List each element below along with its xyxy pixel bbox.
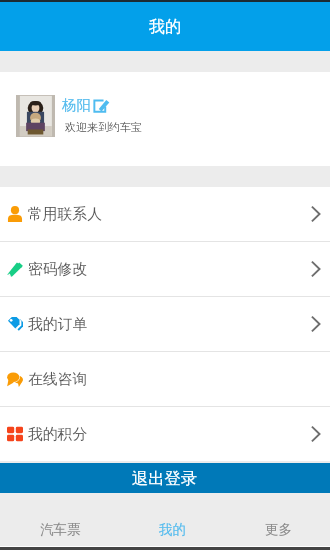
staticText: 汽车票	[40, 521, 81, 538]
button[interactable]: 我的	[117, 512, 227, 546]
staticText: 欢迎来到约车宝	[65, 120, 142, 134]
staticText: 常用联系人	[28, 205, 102, 224]
staticText: 杨阳	[62, 96, 91, 114]
staticText: 我的订单	[28, 315, 88, 334]
staticText: 退出登录	[132, 468, 198, 489]
button[interactable]: 密码修改	[0, 242, 330, 296]
staticText: 我的	[159, 521, 186, 538]
button[interactable]: 汽车票	[5, 512, 115, 546]
button[interactable]: Edit profile	[93, 98, 110, 113]
staticText: 密码修改	[28, 260, 88, 279]
button[interactable]: 退出登录	[0, 463, 330, 493]
staticText: 我的	[149, 17, 181, 37]
button[interactable]: 我的订单	[0, 297, 330, 351]
button[interactable]: 在线咨询	[0, 352, 330, 406]
button[interactable]: 更多	[223, 512, 330, 546]
button[interactable]: 我的积分	[0, 407, 330, 461]
staticText: 在线咨询	[28, 370, 88, 389]
staticText: 我的积分	[28, 425, 88, 444]
button[interactable]: 常用联系人	[0, 187, 330, 241]
staticText: 更多	[265, 521, 292, 538]
